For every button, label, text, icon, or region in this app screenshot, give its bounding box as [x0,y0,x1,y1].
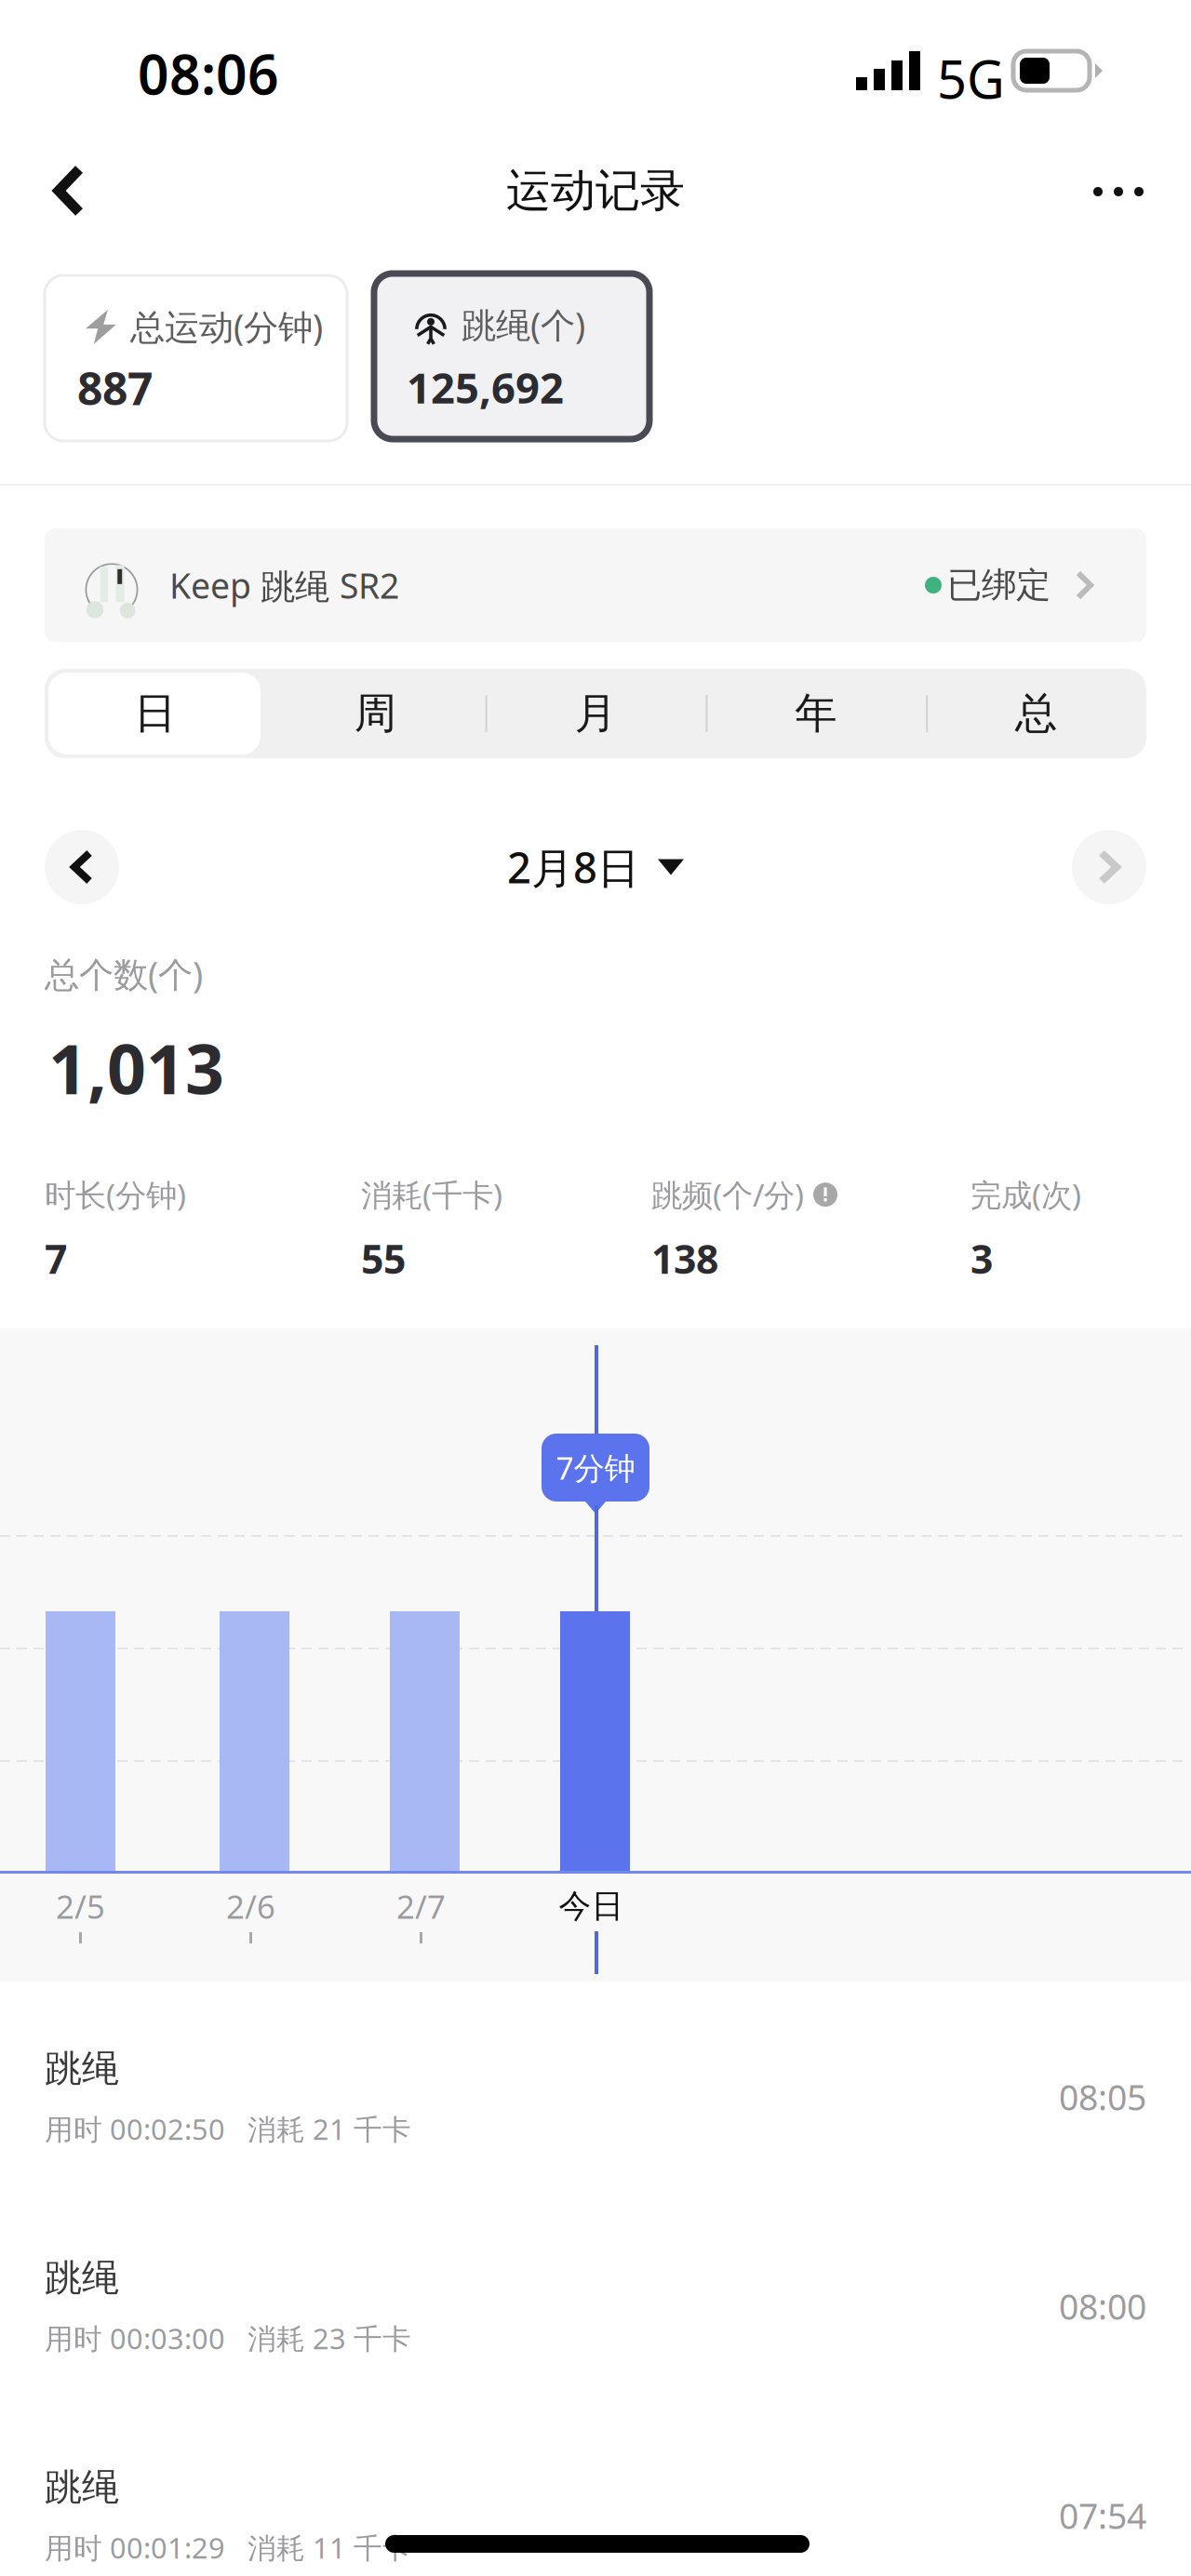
button[interactable]: 日 [45,669,265,758]
staticText: 2/7 [396,1885,446,1928]
staticText: 跳频(个/分) [651,1174,804,1215]
button[interactable]: 月 [485,669,706,758]
staticText: 7 [45,1232,67,1285]
staticText: 138 [651,1232,718,1285]
staticText: 08:00 [1059,2283,1146,2329]
button[interactable]: 上一天 [45,830,119,904]
staticText: 运动记录 [506,163,685,218]
staticText: 2月8日 [507,839,639,895]
button[interactable]: 年 [706,669,926,758]
staticText: 08:06 [138,37,279,110]
staticText: 完成(次) [970,1174,1081,1215]
staticText: 08:05 [1059,2074,1146,2120]
staticText: 月 [575,688,616,739]
staticText: 5G [937,44,1005,113]
staticText: 用时 00:01:29 消耗 11 千卡 [45,2529,411,2566]
staticText: 日 [134,688,176,739]
staticText: 总 [1015,688,1057,739]
staticText: 125,692 [407,359,564,415]
staticText: 总运动(分钟) [130,303,323,349]
button[interactable]: 总运动(分钟) [45,275,347,441]
button[interactable]: 跳绳 [0,2000,1191,2207]
staticText: 3 [970,1232,993,1285]
staticText: 2/6 [226,1885,275,1928]
staticText: 7分钟 [556,1447,635,1488]
button[interactable]: 返回 [22,144,115,237]
staticText: 已绑定 [947,564,1050,607]
staticText: 周 [354,688,396,739]
staticText: 今日 [559,1886,624,1926]
staticText: 跳绳(个) [462,301,585,348]
staticText: 2/5 [56,1885,105,1928]
staticText: 用时 00:02:50 消耗 21 千卡 [45,2110,411,2148]
button[interactable]: 更多 [1046,144,1161,237]
staticText: 跳绳 [45,2046,119,2091]
staticText: 跳绳 [45,2464,119,2510]
button[interactable]: 周 [265,669,485,758]
staticText: Keep 跳绳 SR2 [169,562,399,608]
button[interactable]: Keep 跳绳 SR2 [45,528,1146,642]
button[interactable]: 2月8日 [507,830,684,904]
staticText: 用时 00:03:00 消耗 23 千卡 [45,2319,411,2357]
button[interactable]: 下一天 [1072,830,1146,904]
button[interactable]: 总 [926,669,1146,758]
staticText: 07:54 [1059,2492,1146,2539]
button[interactable]: 跳绳(个) [374,274,649,439]
button[interactable]: 跳绳 [0,2209,1191,2416]
staticText: 时长(分钟) [45,1174,186,1215]
staticText: 1,013 [48,1022,224,1113]
staticText: 消耗(千卡) [361,1174,502,1215]
staticText: 总个数(个) [45,951,203,997]
staticText: 跳绳 [45,2255,119,2301]
staticText: 55 [361,1232,406,1285]
staticText: 887 [77,358,153,417]
button[interactable]: 跳绳 [0,2419,1191,2576]
staticText: 年 [795,688,837,739]
